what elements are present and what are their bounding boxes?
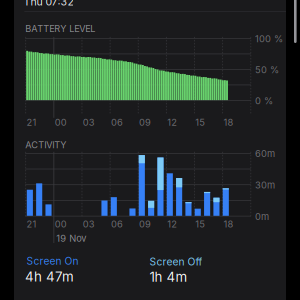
staticText: 15 <box>195 117 205 128</box>
staticText: 00 <box>55 218 67 230</box>
staticText: Thu 07:32 <box>23 0 73 8</box>
staticText: 09 <box>139 218 151 230</box>
button[interactable]: Thu 07:32 <box>14 0 286 11</box>
staticText: 0 % <box>255 95 273 106</box>
staticText: 09 <box>139 117 151 128</box>
staticText: 30m <box>255 179 275 191</box>
staticText: 12 <box>167 117 177 128</box>
staticText: 19 Nov <box>56 233 86 244</box>
staticText: 100 % <box>255 33 283 44</box>
staticText: BATTERY LEVEL <box>25 23 95 34</box>
staticText: 03 <box>83 218 95 230</box>
staticText: 0m <box>255 211 269 222</box>
staticText: 18 <box>223 117 233 128</box>
staticText: Screen Off <box>149 255 202 268</box>
staticText: 06 <box>111 218 123 230</box>
staticText: 4h 47m <box>25 269 74 285</box>
staticText: 18 <box>223 218 233 230</box>
staticText: 03 <box>83 117 95 128</box>
staticText: 50 % <box>255 64 279 75</box>
staticText: 00 <box>55 117 67 128</box>
staticText: 1h 4m <box>149 269 187 285</box>
staticText: 06 <box>111 117 123 128</box>
staticText: 21 <box>26 218 36 230</box>
staticText: 60m <box>255 148 275 159</box>
staticText: 12 <box>167 218 177 230</box>
staticText: 21 <box>26 117 36 128</box>
staticText: 15 <box>195 218 205 230</box>
staticText: Screen On <box>27 255 79 267</box>
staticText: ACTIVITY <box>25 139 66 150</box>
